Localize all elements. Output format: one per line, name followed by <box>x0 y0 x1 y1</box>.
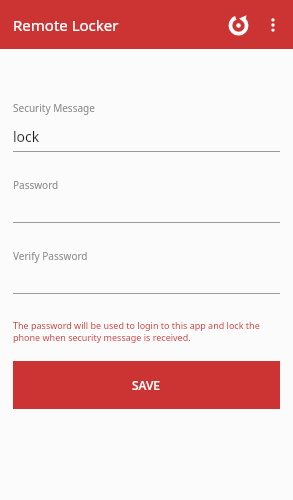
staticText: The password will be used to login to th… <box>13 319 280 344</box>
button[interactable] <box>13 204 280 223</box>
button[interactable]: More options <box>256 8 290 42</box>
staticText: Remote Locker <box>13 15 119 35</box>
button[interactable]: lock <box>13 127 280 152</box>
staticText: Security Message <box>13 101 95 115</box>
staticText: SAVE <box>132 377 161 393</box>
staticText: lock <box>13 127 40 146</box>
button[interactable] <box>13 275 280 294</box>
button[interactable]: SAVE <box>13 361 280 409</box>
staticText: Verify Password <box>13 249 88 263</box>
button[interactable]: Reset <box>220 7 256 43</box>
staticText: Password <box>13 178 59 192</box>
